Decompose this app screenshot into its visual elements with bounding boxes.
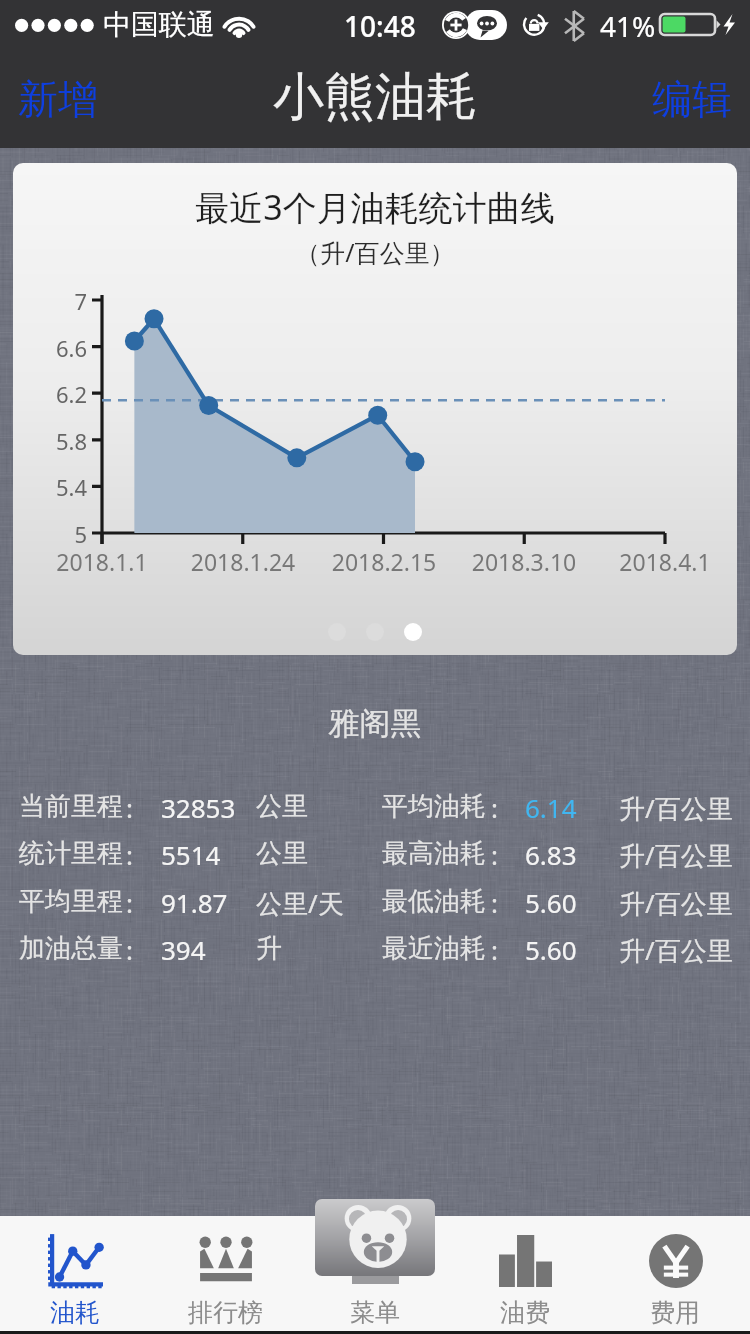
button[interactable]: 油耗 <box>0 1216 150 1334</box>
staticText: 最近3个月油耗统计曲线 <box>13 184 737 230</box>
staticText: : <box>126 790 133 825</box>
staticText: 91.87 <box>161 885 228 920</box>
staticText: 6.6 <box>13 333 87 363</box>
staticText: 升/百公里 <box>619 837 733 873</box>
staticText: 新增 <box>18 74 98 124</box>
staticText: 5 <box>13 519 87 549</box>
staticText: 2018.2.15 <box>294 546 474 577</box>
staticText: 7 <box>13 286 87 316</box>
button[interactable]: 费用 <box>600 1216 750 1334</box>
staticText: 5.8 <box>13 426 87 456</box>
staticText: 雅阁黑 <box>0 704 750 743</box>
staticText: : <box>126 932 133 967</box>
staticText: 2018.1.1 <box>13 546 192 577</box>
button[interactable]: 最近3个月油耗统计曲线 <box>13 163 737 655</box>
staticText: : <box>126 885 133 920</box>
staticText: 升/百公里 <box>619 885 733 921</box>
staticText: （升/百公里） <box>13 235 737 269</box>
staticText: 41% <box>600 7 656 45</box>
staticText: 2018.3.10 <box>434 546 614 577</box>
staticText: 公里/天 <box>256 885 344 921</box>
staticText: 中国联通 <box>103 7 215 42</box>
staticText: 当前里程 <box>19 790 123 823</box>
staticText: 公里 <box>256 790 308 823</box>
staticText: 5514 <box>161 837 221 872</box>
staticText: : <box>491 932 498 967</box>
staticText: 平均里程 <box>19 885 123 918</box>
staticText: 升 <box>256 932 282 965</box>
staticText: 加油总量 <box>19 932 123 965</box>
staticText: 升/百公里 <box>619 932 733 968</box>
staticText: 6.14 <box>525 790 577 825</box>
staticText: 2018.4.1 <box>575 546 737 577</box>
staticText: 编辑 <box>652 74 732 124</box>
staticText: : <box>126 837 133 872</box>
staticText: 菜单 <box>350 1297 400 1328</box>
staticText: 5.60 <box>525 885 577 920</box>
staticText: 32853 <box>161 790 236 825</box>
staticText: 公里 <box>256 837 308 870</box>
button[interactable]: 新增 <box>4 66 112 132</box>
button[interactable]: 编辑 <box>638 66 746 132</box>
staticText: 5.60 <box>525 932 577 967</box>
staticText: 最高油耗 <box>382 837 486 870</box>
staticText: 最近油耗 <box>382 932 486 965</box>
staticText: 5.4 <box>13 472 87 502</box>
staticText: 排行榜 <box>188 1297 263 1328</box>
staticText: 最低油耗 <box>382 885 486 918</box>
staticText: 394 <box>161 932 206 967</box>
staticText: 统计里程 <box>19 837 123 870</box>
button[interactable]: 菜单 <box>315 1199 435 1276</box>
staticText: 小熊油耗 <box>0 65 750 129</box>
button[interactable]: 排行榜 <box>150 1216 300 1334</box>
button[interactable]: 油费 <box>450 1216 600 1334</box>
staticText: 油耗 <box>50 1297 100 1328</box>
button[interactable]: 菜单 <box>300 1216 450 1334</box>
staticText: 升/百公里 <box>619 790 733 826</box>
staticText: : <box>491 837 498 872</box>
staticText: 6.2 <box>13 379 87 409</box>
staticText: 6.83 <box>525 837 577 872</box>
staticText: 油费 <box>500 1297 550 1328</box>
staticText: 费用 <box>650 1297 700 1328</box>
staticText: : <box>491 885 498 920</box>
staticText: 平均油耗 <box>382 790 486 823</box>
staticText: 2018.1.24 <box>153 546 333 577</box>
staticText: : <box>491 790 498 825</box>
staticText: 10:48 <box>344 7 416 45</box>
